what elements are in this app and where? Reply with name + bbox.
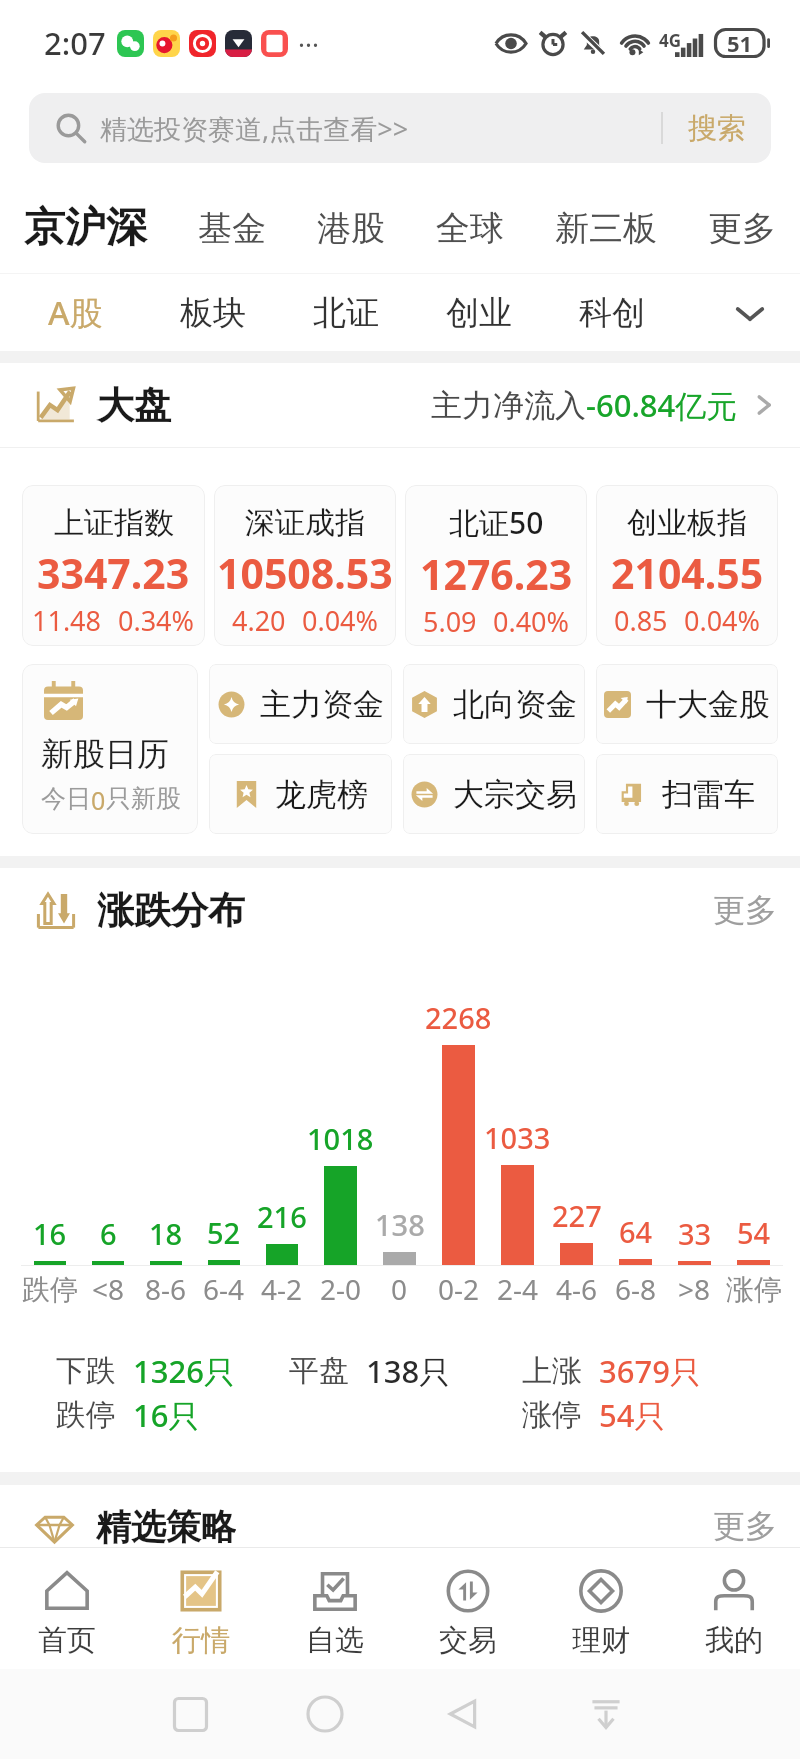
staticText: 16 (33, 1214, 67, 1253)
staticText: -60.84亿元 (586, 384, 738, 426)
staticText: 0 (91, 783, 106, 817)
staticText: >8 (678, 1270, 711, 1308)
button[interactable]: Home (285, 1674, 365, 1754)
staticText: 0.04% (302, 602, 379, 639)
staticText: 3347.23 (37, 545, 190, 601)
staticText: 平盘 (289, 1352, 349, 1390)
staticText: 更多 (708, 207, 776, 250)
staticText: 54 (737, 1213, 771, 1252)
staticText: 4.20 (232, 602, 286, 639)
button[interactable]: 我的 (667, 1548, 800, 1669)
button[interactable]: 大宗交易 (403, 754, 585, 834)
staticText: 基金 (198, 207, 266, 250)
button[interactable]: 北证 (313, 274, 446, 351)
staticText: 11.48 (32, 602, 102, 639)
staticText: 2-4 (497, 1270, 539, 1308)
button[interactable]: A股 (48, 274, 180, 351)
button[interactable]: 精选策略 (35, 1505, 777, 1547)
staticText: ··· (298, 26, 319, 61)
button[interactable]: 大盘 (34, 363, 776, 447)
staticText: 新三板 (555, 207, 657, 250)
staticText: 0.85 (614, 602, 668, 639)
staticText: 京沪深 (24, 202, 147, 254)
button[interactable]: Recents (150, 1674, 230, 1754)
button[interactable]: 北向资金 (403, 664, 585, 744)
staticText: 跌停 (22, 1272, 78, 1307)
staticText: 创业板指 (627, 504, 747, 542)
staticText: 十大金股 (646, 685, 770, 724)
button[interactable]: 港股 (317, 207, 385, 250)
button[interactable]: 精选投资赛道,点击查看>> (29, 93, 771, 163)
staticText: 138 (375, 1205, 425, 1244)
button[interactable]: 科创 (579, 274, 712, 351)
staticText: 0-2 (438, 1270, 480, 1308)
staticText: 4-6 (556, 1270, 598, 1308)
staticText: 2268 (425, 998, 492, 1037)
staticText: 只新股 (106, 783, 181, 814)
staticText: 1326只 (133, 1350, 235, 1392)
staticText: 北证50 (449, 502, 544, 543)
staticText: 18 (149, 1214, 183, 1253)
staticText: 全球 (436, 207, 504, 250)
staticText: 216 (257, 1197, 307, 1236)
staticText: 交易 (439, 1622, 497, 1659)
button[interactable]: 行情 (134, 1548, 268, 1669)
staticText: 搜索 (688, 110, 746, 147)
button[interactable]: Hide keyboard (566, 1674, 646, 1754)
staticText: 扫雷车 (662, 775, 755, 814)
button[interactable]: 新股日历 (22, 664, 198, 834)
button[interactable]: 涨跌分布 (36, 868, 777, 952)
button[interactable]: 龙虎榜 (209, 754, 392, 834)
staticText: 4-2 (261, 1270, 303, 1308)
staticText: 科创 (579, 292, 645, 334)
staticText: 16只 (133, 1394, 200, 1436)
button[interactable]: 十大金股 (596, 664, 778, 744)
staticText: 6 (100, 1214, 117, 1253)
button[interactable]: 理财 (534, 1548, 667, 1669)
button[interactable]: 主力资金 (209, 664, 392, 744)
staticText: 涨停 (522, 1396, 582, 1434)
staticText: 板块 (180, 292, 246, 334)
staticText: 精选策略 (96, 1505, 236, 1547)
staticText: 新股日历 (41, 734, 169, 774)
button[interactable]: 新三板 (555, 207, 657, 250)
button[interactable]: 首页 (0, 1548, 134, 1669)
button[interactable]: 北证50 (405, 485, 587, 646)
staticText: 我的 (705, 1622, 763, 1659)
button[interactable]: 交易 (401, 1548, 534, 1669)
staticText: 64 (619, 1212, 653, 1251)
staticText: 创业 (446, 292, 512, 334)
staticText: 今日 (41, 783, 91, 814)
button[interactable]: 更多 (708, 207, 776, 250)
button[interactable]: 全球 (436, 207, 504, 250)
button[interactable]: 创业板指 (596, 485, 778, 646)
staticText: 跌停 (56, 1396, 116, 1434)
staticText: 33 (678, 1214, 712, 1253)
staticText: 主力资金 (260, 685, 384, 724)
staticText: 54只 (599, 1394, 666, 1436)
staticText: 上证指数 (54, 504, 174, 542)
staticText: 6-4 (203, 1270, 245, 1308)
staticText: 2104.55 (611, 545, 764, 601)
staticText: 港股 (317, 207, 385, 250)
button[interactable]: 自选 (268, 1548, 401, 1669)
staticText: 8-6 (145, 1270, 187, 1308)
button[interactable]: Expand tabs (712, 274, 788, 351)
staticText: 6-8 (615, 1270, 657, 1308)
button[interactable]: Back (424, 1674, 504, 1754)
button[interactable]: 上证指数 (22, 485, 205, 646)
staticText: 精选投资赛道,点击查看>> (100, 110, 409, 147)
button[interactable]: 基金 (198, 207, 266, 250)
button[interactable]: 创业 (446, 274, 579, 351)
staticText: 自选 (306, 1622, 364, 1659)
staticText: 3679只 (599, 1350, 701, 1392)
button[interactable]: 板块 (180, 274, 313, 351)
button[interactable]: 扫雷车 (596, 754, 778, 834)
button[interactable]: 深证成指 (214, 485, 396, 646)
staticText: 0.04% (684, 602, 761, 639)
staticText: 行情 (172, 1622, 230, 1659)
staticText: 大盘 (97, 382, 171, 429)
staticText: 龙虎榜 (275, 775, 368, 814)
button[interactable]: 京沪深 (24, 202, 147, 254)
staticText: 上涨 (522, 1352, 582, 1390)
